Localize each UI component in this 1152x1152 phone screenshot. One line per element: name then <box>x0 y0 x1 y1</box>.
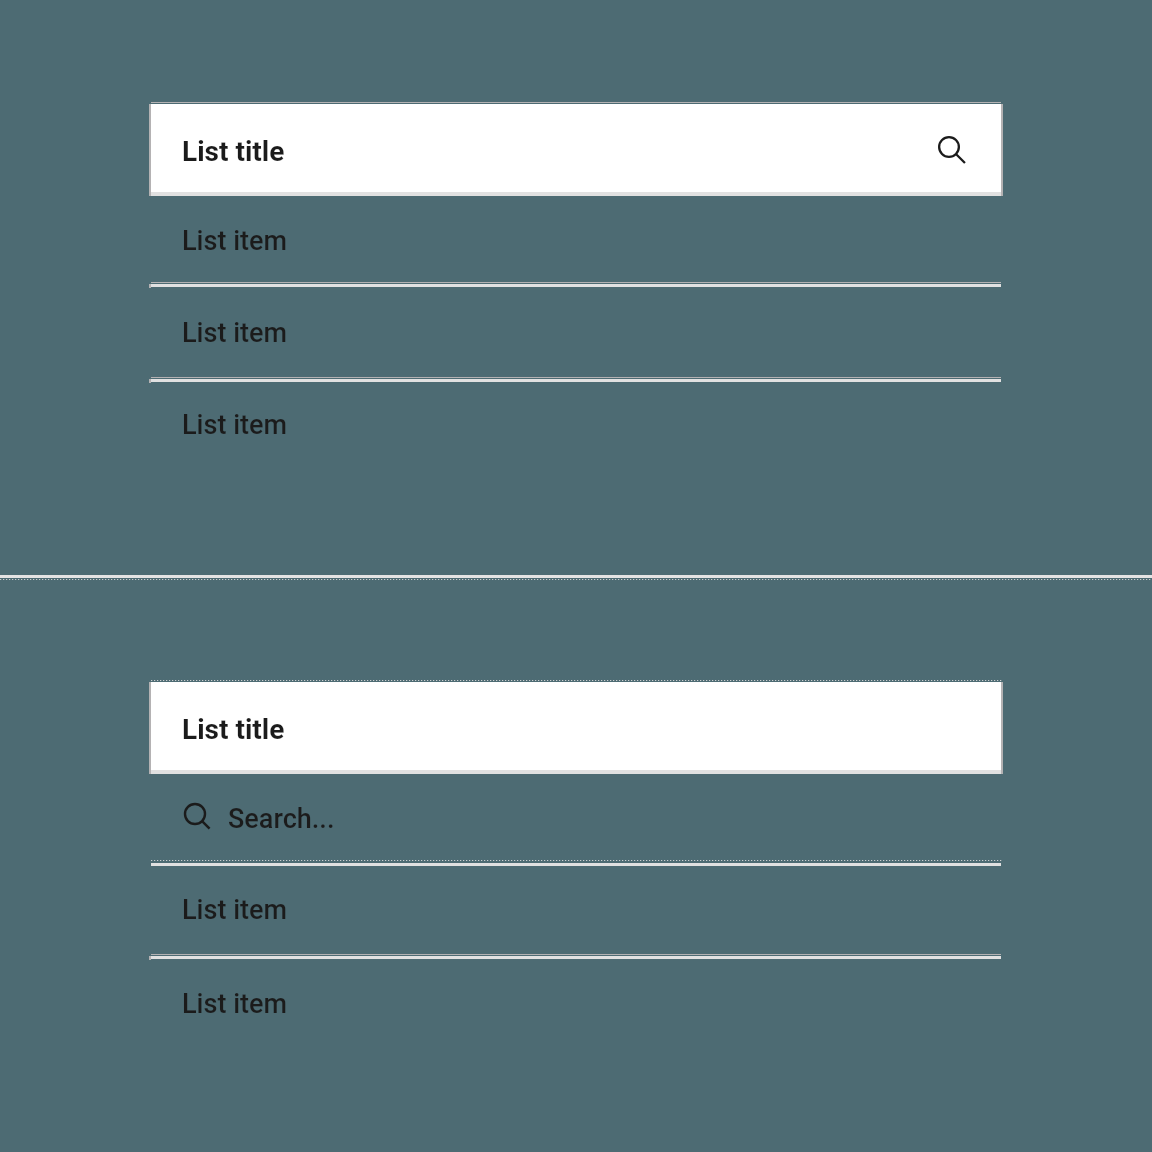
button[interactable]: Search... <box>151 774 1001 860</box>
button[interactable]: List item <box>151 196 1001 282</box>
staticText: List title <box>182 135 285 168</box>
button[interactable]: List item <box>151 960 1001 1050</box>
button[interactable]: List item <box>151 288 1001 377</box>
button[interactable]: Search <box>917 115 981 179</box>
staticText: List item <box>182 988 288 1020</box>
staticText: List item <box>182 894 288 926</box>
staticText: List title <box>182 713 285 746</box>
staticText: List item <box>182 409 288 441</box>
staticText: List item <box>182 317 288 349</box>
button[interactable]: List item <box>151 383 1001 473</box>
staticText: Search... <box>228 803 335 835</box>
button[interactable]: List item <box>151 866 1001 954</box>
staticText: List item <box>182 225 288 257</box>
